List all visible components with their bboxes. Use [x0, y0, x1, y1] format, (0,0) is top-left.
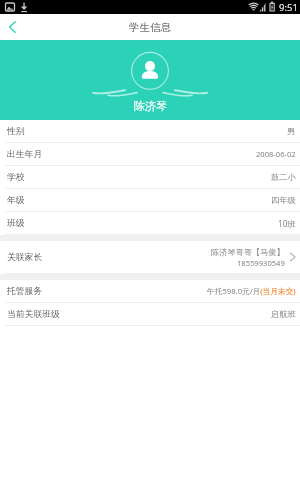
staticText: 出生年月 — [7, 149, 43, 160]
button[interactable]: 托管服务 — [0, 280, 300, 303]
button[interactable]: 性别 — [0, 120, 300, 143]
staticText: 9:51 — [279, 1, 298, 14]
staticText: 男 — [287, 126, 296, 136]
staticText: 18559930549 — [237, 258, 285, 268]
staticText: 托管服务 — [7, 286, 43, 297]
staticText: 10班 — [278, 218, 296, 229]
staticText: 鼓二小 — [271, 172, 296, 182]
staticText: 陈济琴 — [134, 99, 167, 113]
staticText: 性别 — [7, 126, 25, 137]
staticText: 启航班 — [271, 309, 296, 319]
staticText: 陈济琴哥哥【马俊】 — [211, 247, 285, 257]
button[interactable]: 出生年月 — [0, 143, 300, 166]
staticText: 四年级 — [271, 195, 296, 205]
button[interactable]: 当前关联班级 — [0, 303, 300, 326]
button[interactable]: 关联家长 — [0, 241, 300, 274]
staticText: 班级 — [7, 218, 25, 229]
button[interactable]: 学校 — [0, 166, 300, 189]
staticText: 关联家长 — [7, 252, 43, 263]
staticText: 午托598.0元/月(当月未交) — [207, 286, 296, 297]
staticText: 学校 — [7, 172, 25, 183]
staticText: 学生信息 — [129, 21, 171, 34]
staticText: 当前关联班级 — [7, 309, 60, 320]
button[interactable]: 年级 — [0, 189, 300, 212]
staticText: 2008-06-02 — [256, 149, 296, 159]
button[interactable]: Back — [0, 14, 26, 40]
staticText: 年级 — [7, 195, 25, 206]
button[interactable]: 班级 — [0, 212, 300, 235]
